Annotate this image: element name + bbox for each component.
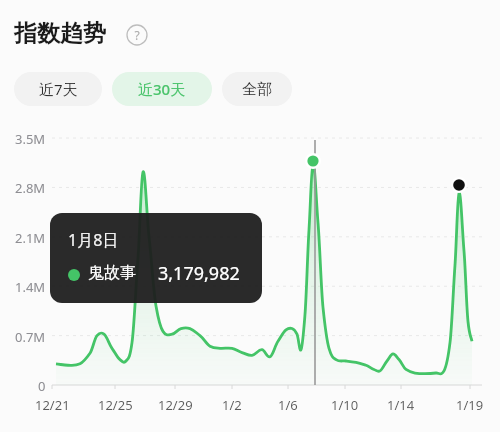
staticText: 0.7M <box>15 328 46 346</box>
staticText: 0 <box>38 377 46 395</box>
button[interactable]: 全部 <box>222 72 292 106</box>
staticText: 1.4M <box>15 278 46 296</box>
staticText: 全部 <box>242 80 272 99</box>
button[interactable]: 1月8日 <box>50 213 262 303</box>
button[interactable]: 近7天 <box>14 72 102 106</box>
staticText: 2.8M <box>15 179 46 197</box>
staticText: ? <box>134 27 140 43</box>
staticText: 3,179,982 <box>158 261 240 286</box>
staticText: 2.1M <box>15 229 46 247</box>
staticText: 12/25 <box>98 396 133 414</box>
staticText: 3.5M <box>15 130 46 148</box>
staticText: 12/21 <box>35 396 70 414</box>
staticText: 1/10 <box>331 396 359 414</box>
staticText: 近30天 <box>138 79 186 99</box>
staticText: 1月8日 <box>68 229 119 251</box>
staticText: 鬼故事 <box>88 263 136 283</box>
staticText: 近7天 <box>39 79 78 99</box>
staticText: 1/6 <box>278 396 298 414</box>
staticText: 1/14 <box>387 396 415 414</box>
staticText: 12/29 <box>158 396 193 414</box>
staticText: 1/19 <box>456 396 484 414</box>
staticText: 1/2 <box>222 396 242 414</box>
button[interactable]: 近30天 <box>112 72 212 106</box>
button[interactable]: Help <box>126 24 148 46</box>
staticText: 指数趋势 <box>14 19 106 48</box>
